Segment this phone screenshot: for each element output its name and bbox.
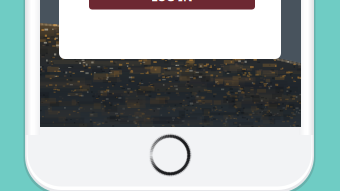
staticText: LOG IN xyxy=(151,0,193,4)
button[interactable]: Home xyxy=(148,133,192,177)
button[interactable]: LOG IN xyxy=(89,0,255,9)
